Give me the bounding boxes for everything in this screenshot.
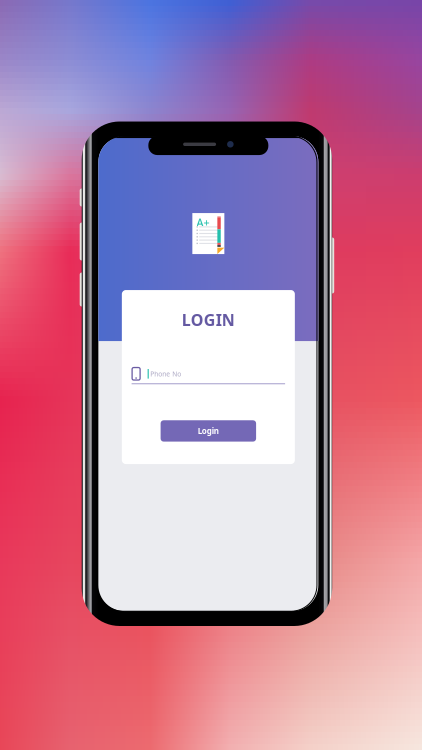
button[interactable]: Login xyxy=(161,420,256,442)
staticText: Login xyxy=(198,426,219,436)
staticText: Phone No xyxy=(150,369,181,378)
staticText: LOGIN xyxy=(182,309,235,330)
staticText: A+ xyxy=(197,215,210,229)
button[interactable]: Phone No xyxy=(132,367,285,384)
